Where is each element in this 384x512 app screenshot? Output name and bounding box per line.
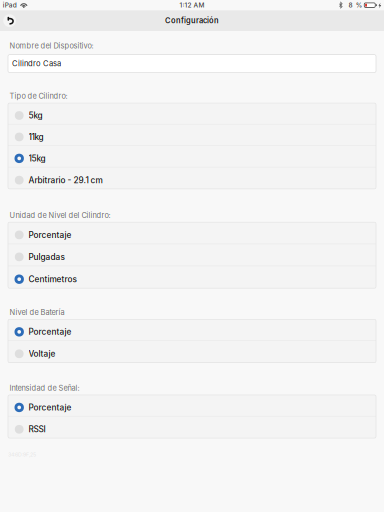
staticText: Centimetros (29, 274, 77, 284)
button[interactable]: Voltaje (8, 341, 376, 363)
staticText: Arbitrario - 29.1 cm (29, 175, 103, 185)
staticText: 5kg (29, 110, 43, 120)
staticText: Cilindro Casa (12, 59, 61, 68)
staticText: Tipo de Cilindro: (9, 91, 67, 100)
staticText: 1:12 AM (179, 1, 204, 9)
staticText: Nivel de Batería (9, 308, 64, 317)
button[interactable]: 11kg (8, 124, 376, 146)
button[interactable]: RSSI (8, 416, 376, 438)
staticText: Voltaje (29, 349, 56, 359)
staticText: Porcentaje (29, 402, 72, 412)
staticText: RSSI (29, 424, 46, 434)
button[interactable]: Pulgadas (8, 244, 376, 266)
staticText: 34:6D:9F,25 (8, 452, 36, 458)
staticText: % (356, 1, 362, 9)
button[interactable]: Porcentaje (8, 222, 376, 244)
staticText: iPad (3, 1, 17, 9)
button[interactable]: Centimetros (8, 266, 376, 288)
button[interactable]: Porcentaje (8, 319, 376, 341)
button[interactable]: Arbitrario - 29.1 cm (8, 167, 376, 189)
staticText: 11kg (29, 132, 44, 142)
button[interactable]: Back (0, 10, 19, 31)
staticText: Porcentaje (29, 327, 72, 337)
staticText: Unidad de Nivel del Cilindro: (9, 211, 110, 220)
staticText: 8 (348, 1, 352, 9)
button[interactable]: 15kg (8, 146, 376, 167)
staticText: Intensidad de Señal: (9, 383, 79, 392)
staticText: Configuración (165, 16, 219, 25)
staticText: Porcentaje (29, 230, 72, 240)
staticText: 15kg (29, 153, 46, 163)
staticText: Nombre del Dispositivo: (9, 41, 93, 50)
button[interactable]: Porcentaje (8, 395, 376, 417)
button[interactable]: 5kg (8, 103, 376, 124)
staticText: Pulgadas (29, 252, 65, 262)
